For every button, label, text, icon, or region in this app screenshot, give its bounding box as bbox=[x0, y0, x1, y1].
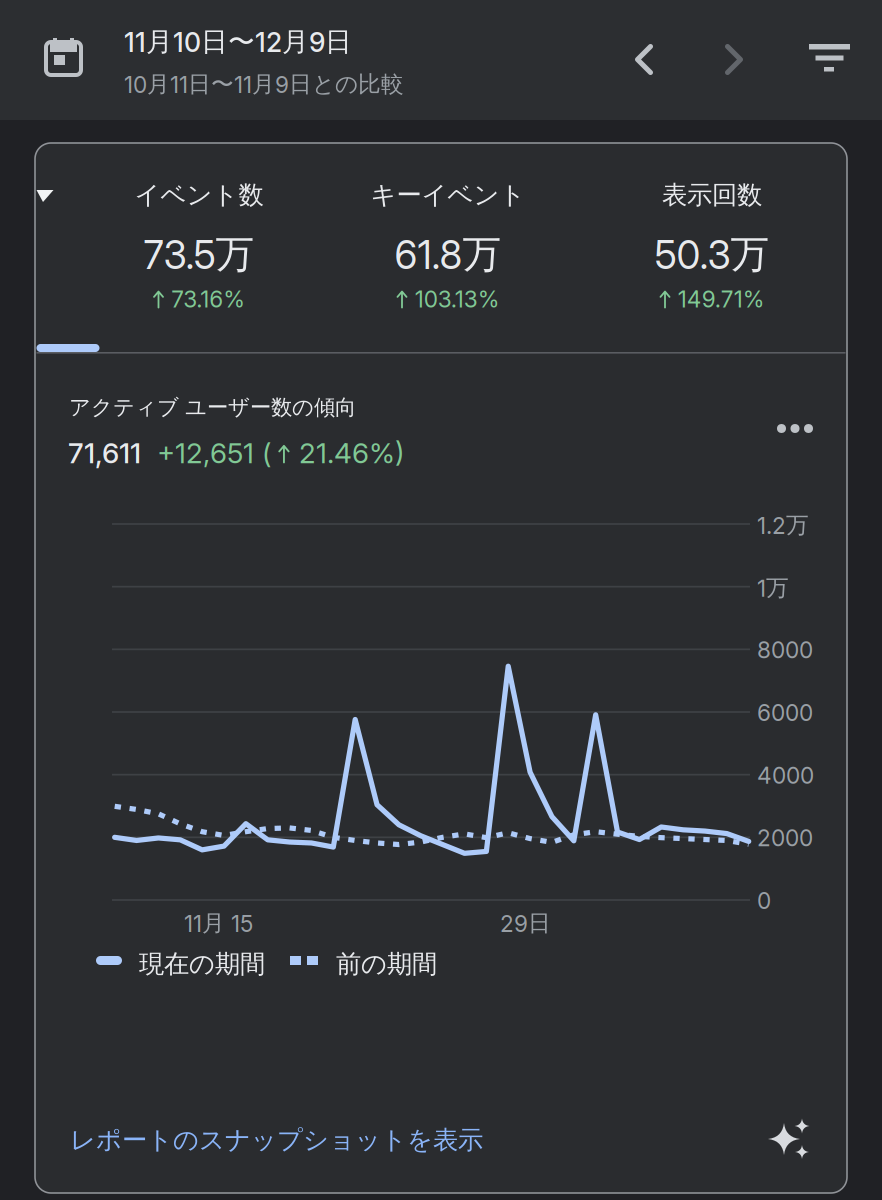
button[interactable]: Previous period bbox=[605, 20, 681, 100]
button[interactable]: Filter bbox=[786, 20, 866, 100]
staticText: 2000 bbox=[757, 824, 813, 852]
staticText: 73.5万 bbox=[143, 230, 254, 279]
staticText: 73.16% bbox=[171, 286, 245, 313]
button[interactable]: Date range bbox=[18, 15, 102, 105]
staticText: キーイベント bbox=[370, 179, 525, 211]
staticText: 表示回数 bbox=[662, 179, 762, 211]
staticText: 8000 bbox=[757, 636, 813, 664]
staticText: 6000 bbox=[757, 699, 813, 726]
staticText: 103.13% bbox=[415, 286, 500, 313]
staticText: 11月 15 bbox=[184, 909, 253, 938]
staticText: 50.3万 bbox=[654, 230, 769, 279]
staticText: 前の期間 bbox=[336, 948, 437, 980]
staticText: 11月10日〜12月9日 bbox=[124, 25, 352, 59]
staticText: 現在の期間 bbox=[139, 948, 265, 980]
staticText: 0 bbox=[757, 887, 771, 914]
staticText: 149.71% bbox=[678, 286, 765, 313]
staticText: 1.2万 bbox=[757, 511, 809, 540]
staticText: 1万 bbox=[757, 574, 789, 602]
button[interactable]: レポートのスナップショットを表示 bbox=[37, 1098, 817, 1182]
staticText: 4000 bbox=[757, 762, 814, 789]
staticText: 61.8万 bbox=[394, 230, 501, 279]
staticText: 21.46%) bbox=[291, 436, 404, 470]
staticText: 29日 bbox=[500, 909, 551, 938]
staticText: 71,611 bbox=[68, 436, 141, 470]
button[interactable]: Next period bbox=[695, 20, 771, 100]
button[interactable]: More options bbox=[760, 402, 830, 454]
staticText: +12,651 ( bbox=[141, 436, 279, 470]
staticText: アクティブ ユーザー数の傾向 bbox=[69, 394, 356, 421]
staticText: レポートのスナップショットを表示 bbox=[70, 1124, 483, 1156]
staticText: イベント数 bbox=[134, 179, 263, 211]
staticText: 10月11日〜11月9日との比較 bbox=[124, 70, 404, 99]
